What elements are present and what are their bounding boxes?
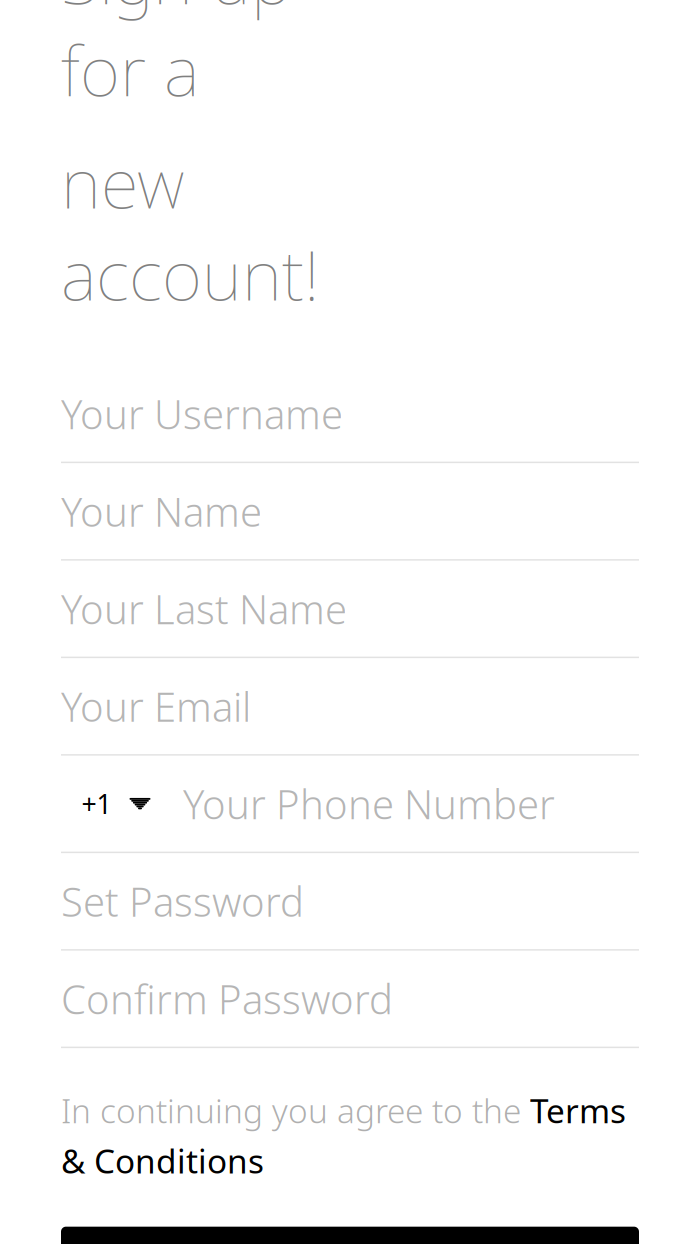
button[interactable]: Your Username <box>61 366 639 463</box>
button[interactable]: Your Phone Number <box>183 756 639 852</box>
staticText: Set Password <box>61 875 304 928</box>
button[interactable]: Confirm Password <box>61 951 639 1048</box>
button[interactable]: Sign Up <box>61 1227 639 1244</box>
staticText: Your Name <box>61 485 262 538</box>
staticText: Your Phone Number <box>183 777 555 830</box>
staticText: Your Last Name <box>61 582 347 635</box>
button[interactable]: In continuing you agree to the <box>61 1048 639 1183</box>
staticText: Confirm Password <box>61 972 393 1025</box>
button[interactable]: Your Name <box>61 463 639 561</box>
button[interactable]: Your Last Name <box>61 561 639 658</box>
staticText: +1 <box>81 786 111 821</box>
button[interactable]: Set Password <box>61 853 639 951</box>
staticText: new account! <box>61 135 319 320</box>
staticText: In continuing you agree to the <box>61 1088 530 1132</box>
button[interactable]: Your Email <box>61 658 639 756</box>
staticText: Sign up for a <box>61 0 291 115</box>
button[interactable]: Country code <box>61 756 171 852</box>
staticText: Your Username <box>61 387 343 440</box>
staticText: Your Email <box>61 680 251 733</box>
staticText: Terms <box>530 1088 626 1132</box>
staticText: & Conditions <box>61 1138 264 1183</box>
